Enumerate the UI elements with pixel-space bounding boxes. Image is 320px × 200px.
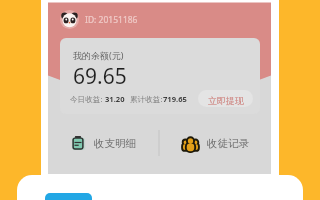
staticText: 31.20 [105,94,125,104]
staticText: 69.65 [73,62,127,91]
staticText: 今日收益: [70,94,105,104]
staticText: 719.65 [163,94,187,104]
button[interactable]: 收徒记录 [160,114,271,172]
staticText: 收徒记录 [207,137,249,150]
staticText: 立即提现 [208,95,244,106]
staticText: ID: 20151186 [85,14,138,26]
staticText: 收支明细 [94,137,136,150]
button[interactable]: Home indicator [45,193,92,200]
button[interactable]: 收支明细 [48,114,158,172]
button[interactable]: 立即提现 [198,90,253,107]
staticText: 累计收益: [130,94,163,104]
staticText: 我的余额(元) [73,49,124,61]
